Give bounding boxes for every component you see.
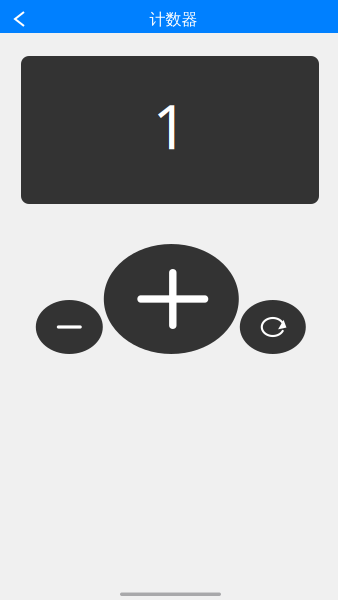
button[interactable]: Back bbox=[0, 0, 36, 33]
button[interactable]: Decrement bbox=[36, 300, 103, 354]
button[interactable]: Reset bbox=[240, 300, 306, 354]
button[interactable]: Increment bbox=[104, 244, 239, 354]
staticText: 计数器 bbox=[149, 10, 197, 29]
staticText: 1 bbox=[152, 85, 187, 166]
